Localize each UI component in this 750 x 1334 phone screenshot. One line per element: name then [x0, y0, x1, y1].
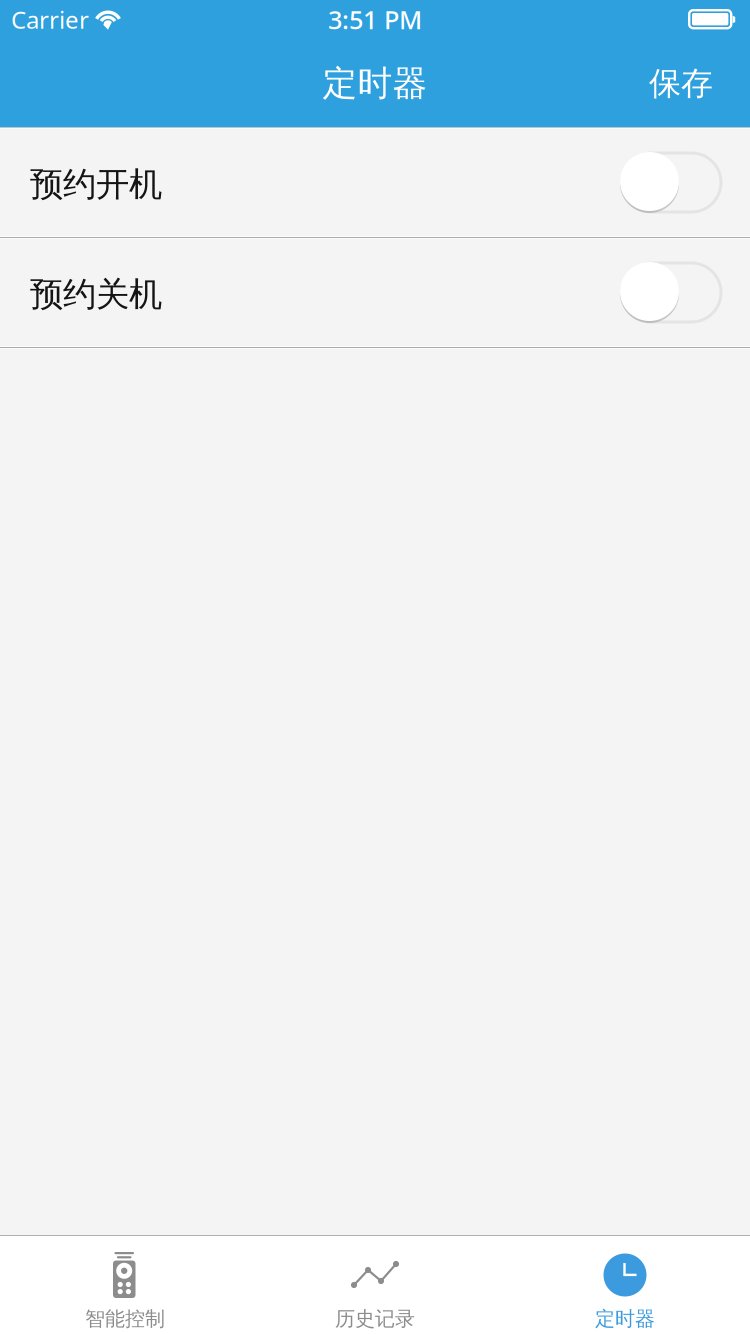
staticText: 历史记录 [335, 1306, 415, 1331]
button[interactable]: 预约开机 [0, 129, 750, 236]
button[interactable]: 智能控制 [0, 1236, 250, 1334]
staticText: 定时器 [595, 1306, 655, 1331]
button[interactable]: 预约关机 [0, 239, 750, 346]
staticText: 保存 [649, 64, 713, 103]
staticText: 预约关机 [30, 274, 162, 315]
staticText: 定时器 [322, 62, 427, 105]
staticText: 3:51 PM [328, 3, 422, 36]
button[interactable]: 定时器 [500, 1236, 750, 1334]
staticText: Carrier [11, 4, 89, 35]
button[interactable]: 保存 [625, 39, 737, 127]
button[interactable]: 历史记录 [250, 1236, 500, 1334]
staticText: 预约开机 [30, 164, 162, 205]
staticText: 智能控制 [85, 1306, 165, 1331]
